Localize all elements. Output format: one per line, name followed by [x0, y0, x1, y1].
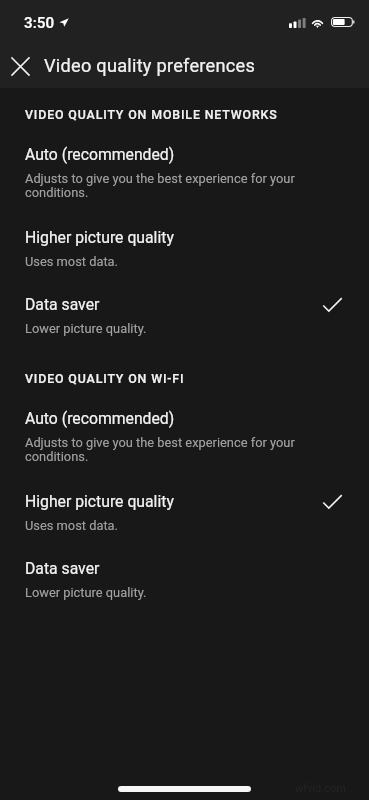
staticText: 3:50 — [24, 14, 55, 32]
staticText: Adjusts to give you the best experience … — [25, 435, 295, 450]
staticText: Lower picture quality. — [25, 585, 147, 600]
staticText: Data saver — [25, 295, 100, 313]
staticText: VIDEO QUALITY ON WI-FI — [25, 371, 185, 386]
button[interactable]: Higher picture quality — [0, 489, 369, 539]
staticText: conditions. — [25, 449, 89, 464]
staticText: Higher picture quality — [25, 492, 174, 510]
staticText: Uses most data. — [25, 254, 118, 269]
staticText: Video quality preferences — [44, 55, 256, 76]
staticText: wfvid.com — [295, 782, 346, 795]
button[interactable]: Auto (recommended) — [0, 142, 369, 206]
staticText: Auto (recommended) — [25, 409, 175, 427]
staticText: Lower picture quality. — [25, 321, 147, 336]
staticText: Higher picture quality — [25, 228, 174, 246]
button[interactable]: Data saver — [0, 292, 369, 342]
button[interactable]: Data saver — [0, 556, 369, 606]
staticText: Adjusts to give you the best experience … — [25, 171, 295, 186]
button[interactable]: Auto (recommended) — [0, 406, 369, 470]
button[interactable]: Close — [6, 52, 34, 80]
staticText: conditions. — [25, 185, 89, 200]
staticText: Data saver — [25, 559, 100, 577]
staticText: Uses most data. — [25, 518, 118, 533]
button[interactable]: Higher picture quality — [0, 225, 369, 275]
staticText: Auto (recommended) — [25, 145, 175, 163]
staticText: VIDEO QUALITY ON MOBILE NETWORKS — [25, 107, 278, 122]
